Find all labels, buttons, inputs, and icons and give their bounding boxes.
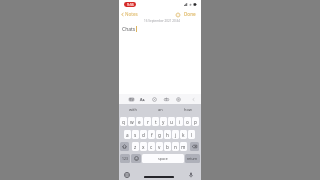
button[interactable]: v	[156, 142, 163, 151]
button[interactable]: Camera	[162, 94, 171, 104]
staticText: return	[187, 156, 198, 161]
staticText: 9:56	[127, 2, 134, 7]
staticText: r	[147, 119, 149, 125]
button[interactable]: k	[180, 130, 187, 139]
staticText: k	[182, 132, 185, 138]
staticText: space	[158, 156, 168, 161]
staticText: h	[166, 132, 169, 138]
button[interactable]: h	[164, 130, 171, 139]
staticText: d	[142, 132, 145, 138]
button[interactable]: Shift	[120, 142, 129, 151]
staticText: 16 September 2021 20:34	[121, 19, 203, 23]
staticText: n	[174, 144, 177, 150]
staticText: 123	[122, 156, 128, 161]
staticText: Done	[184, 11, 196, 17]
button[interactable]: l	[188, 130, 195, 139]
button[interactable]: w	[128, 117, 135, 126]
button[interactable]: z	[132, 142, 139, 151]
button[interactable]: d	[140, 130, 147, 139]
button[interactable]: Hide keyboard	[189, 94, 197, 104]
button[interactable]: with	[119, 104, 147, 115]
button[interactable]: s	[132, 130, 139, 139]
staticText: m	[181, 144, 186, 150]
button[interactable]: Backspace	[190, 142, 199, 151]
staticText: f	[151, 132, 153, 138]
button[interactable]: i	[176, 117, 183, 126]
button[interactable]: q	[120, 117, 127, 126]
button[interactable]: b	[164, 142, 171, 151]
staticText: Chats	[122, 26, 136, 33]
staticText: an	[158, 107, 163, 112]
staticText: q	[122, 119, 125, 125]
button[interactable]: Emoji	[131, 154, 141, 163]
button[interactable]: e	[136, 117, 143, 126]
button[interactable]: Attach	[174, 94, 183, 104]
button[interactable]: y	[160, 117, 167, 126]
staticText: l	[191, 132, 193, 138]
button[interactable]: c	[148, 142, 155, 151]
staticText: e	[138, 119, 141, 125]
staticText: j	[175, 132, 177, 138]
button[interactable]: Done	[183, 10, 197, 18]
staticText: t	[155, 119, 157, 125]
staticText: i	[179, 119, 181, 125]
staticText: how	[184, 107, 192, 112]
staticText: Notes	[125, 11, 138, 17]
button[interactable]: m	[180, 142, 187, 151]
button[interactable]: More options	[174, 11, 181, 18]
staticText: a	[126, 132, 129, 138]
button[interactable]: g	[156, 130, 163, 139]
staticText: w	[130, 119, 134, 125]
button[interactable]: Markup	[150, 94, 159, 104]
staticText: p	[194, 119, 197, 125]
staticText: u	[170, 119, 173, 125]
button[interactable]: Notes	[121, 11, 138, 17]
button[interactable]: Dictate	[188, 172, 194, 178]
button[interactable]: x	[140, 142, 147, 151]
staticText: b	[166, 144, 169, 150]
button[interactable]: f	[148, 130, 155, 139]
button[interactable]: a	[124, 130, 131, 139]
staticText: s	[134, 132, 137, 138]
button[interactable]: space	[142, 154, 184, 163]
button[interactable]: how	[174, 104, 201, 115]
button[interactable]: Switch keyboard	[124, 172, 130, 178]
button[interactable]: j	[172, 130, 179, 139]
button[interactable]: o	[184, 117, 191, 126]
button[interactable]: n	[172, 142, 179, 151]
staticText: o	[186, 119, 189, 125]
button[interactable]: t	[152, 117, 159, 126]
staticText: z	[134, 144, 137, 150]
staticText: g	[158, 132, 161, 138]
button[interactable]: 123	[120, 154, 130, 163]
button[interactable]: p	[192, 117, 199, 126]
staticText: x	[142, 144, 145, 150]
button[interactable]: Format text	[138, 94, 147, 104]
staticText: with	[129, 107, 137, 112]
staticText: v	[158, 144, 161, 150]
button[interactable]: u	[168, 117, 175, 126]
button[interactable]: return	[185, 154, 200, 163]
staticText: y	[162, 119, 165, 125]
button[interactable]: r	[144, 117, 151, 126]
button[interactable]: an	[147, 104, 174, 115]
button[interactable]: Checklist	[127, 94, 136, 104]
staticText: c	[150, 144, 153, 150]
